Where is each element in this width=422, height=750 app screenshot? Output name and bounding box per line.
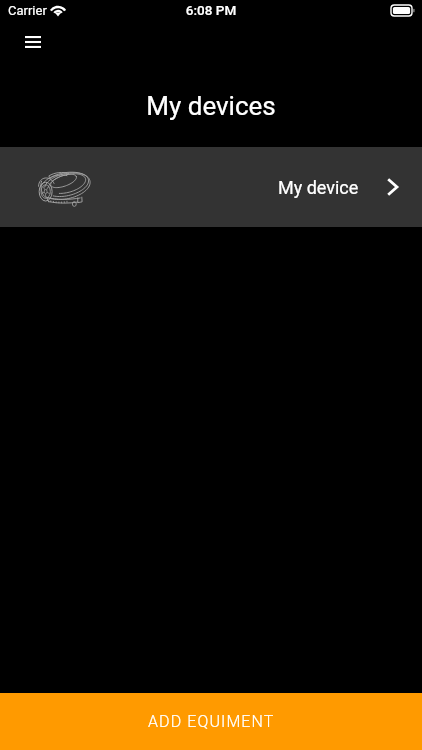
staticText: Carrier [8,3,47,18]
staticText: My devices [0,91,422,121]
staticText: ADD EQUIMENT [148,712,275,731]
button[interactable]: My device [0,147,422,227]
button[interactable]: Menu [8,25,57,59]
staticText: My device [278,177,359,198]
button[interactable]: ADD EQUIMENT [0,693,422,750]
staticText: 6:08 PM [0,2,422,18]
